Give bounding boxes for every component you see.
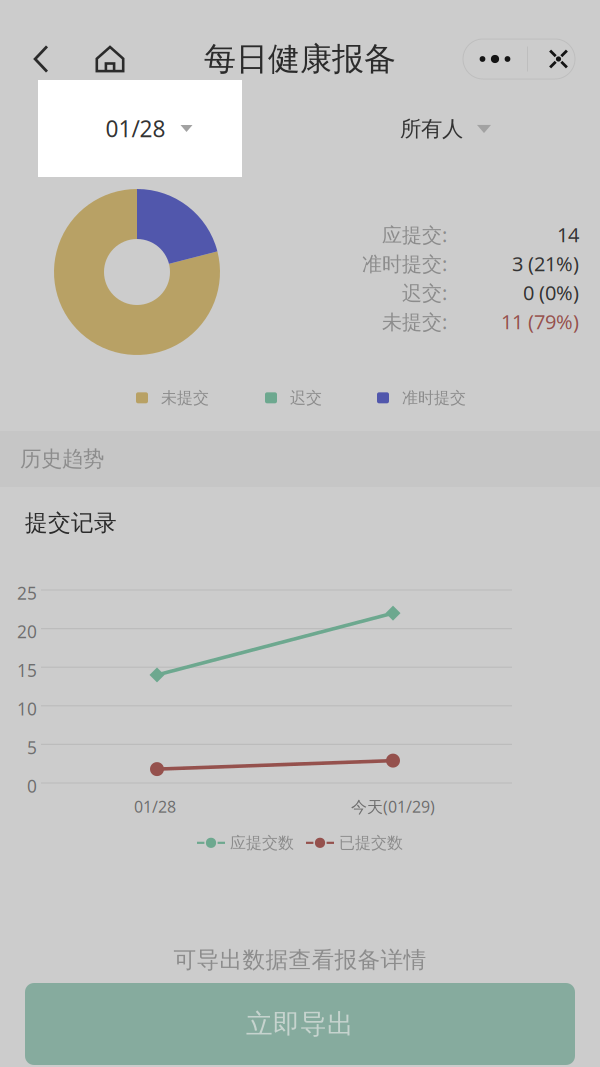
staticText: 应提交: [382, 221, 447, 248]
staticText: 0 [27, 774, 37, 797]
staticText: 5 [27, 736, 37, 759]
button[interactable]: 更多 [463, 39, 527, 79]
button[interactable]: 关闭小程序 [528, 39, 575, 79]
staticText: 应提交数 [230, 833, 294, 853]
staticText: 历史趋势 [20, 446, 104, 472]
staticText: 迟交: [402, 279, 447, 306]
staticText: 01/28 [134, 796, 176, 817]
staticText: 立即导出 [246, 1008, 354, 1040]
staticText: 所有人 [400, 116, 463, 142]
staticText: 未提交 [161, 388, 209, 408]
staticText: 14 [557, 221, 579, 248]
staticText: 11 (79%) [501, 308, 579, 335]
staticText: 准时提交 [402, 388, 466, 408]
staticText: 3 (21%) [512, 250, 579, 277]
staticText: 今天(01/29) [351, 796, 435, 817]
staticText: 20 [17, 620, 37, 643]
staticText: 15 [17, 659, 37, 682]
staticText: 已提交数 [339, 833, 403, 853]
staticText: 提交记录 [25, 509, 117, 537]
staticText: 迟交 [290, 388, 322, 408]
button[interactable]: 所有人 [400, 99, 560, 159]
staticText: 可导出数据查看报备详情 [173, 946, 426, 974]
button[interactable]: 01/28 [38, 80, 242, 177]
staticText: 10 [17, 697, 37, 720]
button[interactable]: 立即导出 [25, 983, 575, 1065]
staticText: 25 [17, 581, 37, 604]
staticText: 准时提交: [362, 250, 447, 277]
staticText: 0 (0%) [523, 279, 579, 306]
staticText: 01/28 [105, 113, 165, 143]
staticText: 每日健康报备 [204, 39, 396, 79]
staticText: 未提交: [382, 308, 447, 335]
button[interactable]: 返回 [18, 34, 64, 84]
button[interactable]: 首页 [87, 34, 133, 84]
